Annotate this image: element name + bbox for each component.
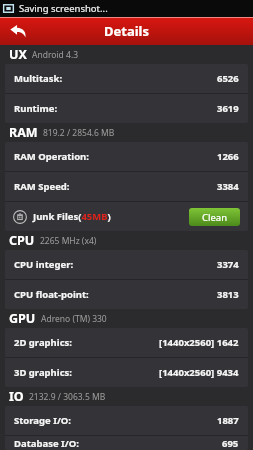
button[interactable]: Database I/O:: [5, 436, 248, 450]
button[interactable]: 3D graphics:: [5, 358, 248, 387]
button[interactable]: RAM Speed:: [5, 172, 248, 201]
button[interactable]: Junk Files(45MB): [5, 202, 248, 231]
staticText: 1887: [217, 414, 239, 427]
button[interactable]: Runtime:: [5, 94, 248, 123]
staticText: 1266: [217, 150, 239, 163]
staticText: 819.2 / 2854.6 MB: [43, 127, 115, 139]
staticText: 695: [222, 437, 239, 450]
button[interactable]: CPU float-point:: [5, 280, 248, 309]
staticText: 2265 MHz (x4): [40, 235, 97, 247]
staticText: RAM Speed:: [14, 180, 70, 193]
staticText: RAM Operation:: [14, 150, 89, 163]
staticText: Database I/O:: [14, 437, 79, 450]
button[interactable]: Multitask:: [5, 64, 248, 93]
button[interactable]: Back: [0, 17, 36, 45]
staticText: 3D graphics:: [14, 366, 72, 379]
staticText: 3384: [217, 180, 239, 193]
button[interactable]: Storage I/O:: [5, 406, 248, 435]
staticText: 2132.9 / 3063.5 MB: [29, 391, 106, 403]
staticText: [1440x2560] 1642: [159, 336, 239, 349]
staticText: 3619: [217, 102, 239, 115]
staticText: Junk Files(45MB): [33, 210, 111, 223]
staticText: Multitask:: [14, 72, 63, 85]
staticText: CPU: [9, 232, 35, 249]
button[interactable]: 2D graphics:: [5, 328, 248, 357]
staticText: Details: [104, 22, 149, 40]
staticText: Android 4.3: [32, 49, 79, 61]
staticText: Storage I/O:: [14, 414, 72, 427]
staticText: Adreno (TM) 330: [41, 313, 107, 325]
staticText: GPU: [9, 310, 36, 327]
staticText: Clean: [202, 211, 228, 224]
button[interactable]: RAM Operation:: [5, 142, 248, 171]
staticText: UX: [9, 46, 27, 63]
staticText: RAM: [9, 124, 38, 141]
staticText: IO: [9, 388, 24, 405]
staticText: CPU float-point:: [14, 288, 89, 301]
button[interactable]: CPU integer:: [5, 250, 248, 279]
staticText: 2D graphics:: [14, 336, 72, 349]
staticText: Saving screenshot...: [19, 2, 108, 15]
staticText: CPU integer:: [14, 258, 74, 271]
staticText: 6526: [217, 72, 239, 85]
staticText: Runtime:: [14, 102, 58, 115]
staticText: 3374: [217, 258, 239, 271]
staticText: 3813: [217, 288, 239, 301]
staticText: [1440x2560] 9434: [159, 366, 239, 379]
button[interactable]: Clean: [189, 208, 240, 226]
